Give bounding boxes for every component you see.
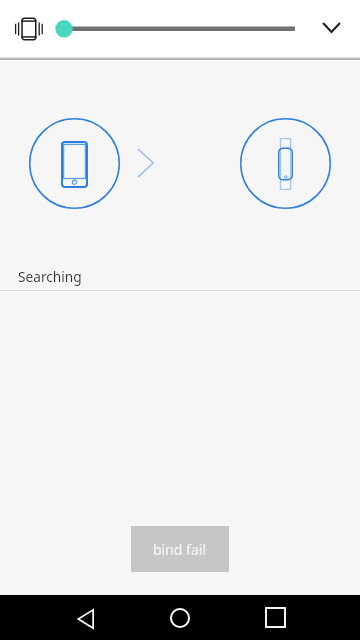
button[interactable]: Home bbox=[157, 595, 203, 640]
staticText: Searching bbox=[18, 267, 82, 286]
button[interactable]: Collapse bbox=[308, 4, 354, 50]
button[interactable]: Phone bbox=[29, 118, 120, 209]
button[interactable]: Band bbox=[240, 118, 331, 209]
staticText: bind fail bbox=[153, 540, 207, 559]
button[interactable]: Back bbox=[62, 596, 108, 640]
button[interactable]: Vibration bbox=[6, 6, 52, 52]
button[interactable]: Recents bbox=[252, 595, 298, 640]
